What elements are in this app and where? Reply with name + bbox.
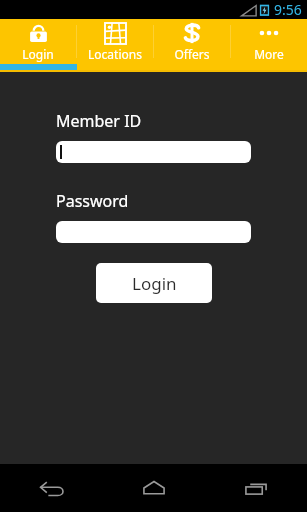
button[interactable] xyxy=(56,221,251,243)
button[interactable]: Login xyxy=(0,19,76,64)
button[interactable]: Home xyxy=(103,464,205,512)
staticText: Locations xyxy=(88,46,142,62)
button[interactable] xyxy=(56,141,251,163)
staticText: Login xyxy=(22,46,54,62)
staticText: More xyxy=(254,46,284,62)
staticText: Login xyxy=(132,272,177,295)
button[interactable]: Login xyxy=(96,263,212,303)
button[interactable]: Offers xyxy=(154,19,230,64)
button[interactable]: Recent apps xyxy=(205,464,307,512)
button[interactable]: Locations xyxy=(77,19,153,64)
staticText: Password xyxy=(56,190,129,212)
staticText: Offers xyxy=(174,46,210,62)
button[interactable]: Back xyxy=(0,464,103,512)
button[interactable]: More xyxy=(231,19,307,64)
staticText: 9:56 xyxy=(274,0,302,19)
staticText: Member ID xyxy=(56,110,142,132)
